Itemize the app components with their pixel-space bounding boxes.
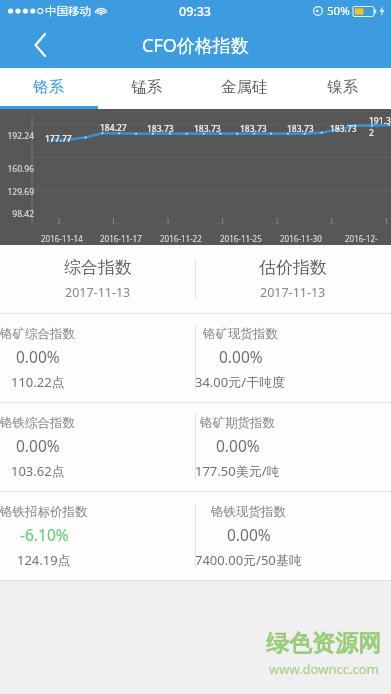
staticText: 0.00% xyxy=(16,435,60,456)
staticText: 综合指数 xyxy=(64,257,132,278)
button[interactable]: 铬矿期货指数 xyxy=(195,403,280,491)
staticText: 184.27 xyxy=(100,122,127,134)
staticText: 191.32 xyxy=(369,115,391,139)
staticText: 183.73 xyxy=(330,123,357,135)
staticText: 铬系 xyxy=(33,77,64,97)
staticText: 183.73 xyxy=(147,123,174,135)
staticText: 2017-11-13 xyxy=(260,284,326,301)
staticText: 铬铁招标价指数 xyxy=(0,504,88,520)
button[interactable]: 铬铁现货指数 xyxy=(195,492,302,580)
staticText: 锰系 xyxy=(131,77,162,97)
staticText: 183.73 xyxy=(240,123,267,135)
button[interactable]: 铬铁招标价指数 xyxy=(0,492,88,580)
staticText: 中国移动 xyxy=(45,4,91,18)
staticText: 铬矿现货指数 xyxy=(203,326,278,342)
staticText: www.downcc.com xyxy=(269,660,379,678)
button[interactable]: Back xyxy=(24,29,56,61)
button[interactable]: 铬矿综合指数 xyxy=(0,314,75,402)
staticText: 2016-11-17 xyxy=(100,233,142,244)
staticText: 129.69 xyxy=(1,186,34,198)
staticText: 2016-11-14 xyxy=(41,233,83,244)
staticText: -6.10% xyxy=(20,524,69,545)
staticText: 192.24 xyxy=(1,130,34,142)
staticText: 177.50美元/吨 xyxy=(195,462,280,480)
staticText: 铬铁现货指数 xyxy=(211,504,286,520)
staticText: 09:33 xyxy=(179,3,212,20)
staticText: 铬矿期货指数 xyxy=(200,415,275,431)
staticText: 7400.00元/50基吨 xyxy=(195,551,302,569)
staticText: 0.00% xyxy=(216,435,260,456)
staticText: 0.00% xyxy=(219,346,263,367)
staticText: 160.96 xyxy=(1,163,34,175)
staticText: 铬矿综合指数 xyxy=(0,326,75,342)
staticText: 2016-11-25 xyxy=(220,233,262,244)
staticText: 镍系 xyxy=(327,77,358,97)
staticText: 50% xyxy=(327,3,350,19)
staticText: 2017-11-13 xyxy=(65,284,131,301)
staticText: 0.00% xyxy=(16,346,60,367)
staticText: 2016-11-30 xyxy=(280,233,322,244)
staticText: 183.73 xyxy=(194,123,221,135)
staticText: 177.77 xyxy=(45,133,72,145)
staticText: 2016-11-22 xyxy=(160,233,202,244)
staticText: 2016-12- xyxy=(345,233,378,244)
staticText: 183.73 xyxy=(287,123,314,135)
button[interactable]: 铬铁综合指数 xyxy=(0,403,75,491)
button[interactable]: 金属硅 xyxy=(195,68,293,106)
button[interactable]: 锰系 xyxy=(97,68,195,106)
staticText: 0.00% xyxy=(227,524,271,545)
button[interactable]: 铬系 xyxy=(0,68,97,106)
staticText: CFO价格指数 xyxy=(142,33,249,58)
staticText: 124.19点 xyxy=(17,551,71,569)
staticText: 估价指数 xyxy=(259,257,327,278)
staticText: 34.00元/干吨度 xyxy=(195,373,286,391)
staticText: 110.22点 xyxy=(11,373,65,391)
staticText: 103.62点 xyxy=(11,462,65,480)
staticText: 铬铁综合指数 xyxy=(0,415,75,431)
staticText: 98.42 xyxy=(1,208,34,220)
button[interactable]: 铬矿现货指数 xyxy=(195,314,286,402)
button[interactable]: 镍系 xyxy=(293,68,391,106)
staticText: 金属硅 xyxy=(221,77,268,97)
staticText: 绿色资源网 xyxy=(266,629,381,658)
